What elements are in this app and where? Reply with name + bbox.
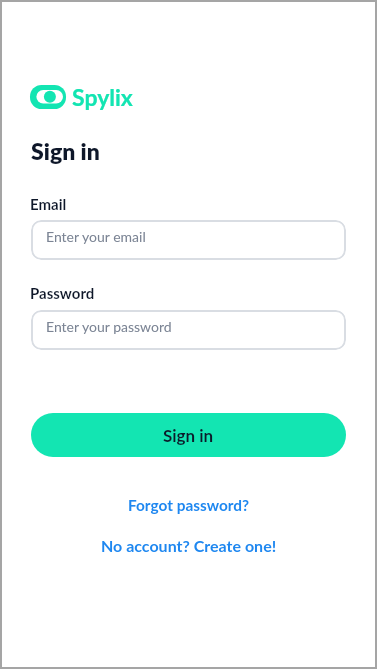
staticText: No account? Create one! (101, 536, 277, 555)
staticText: Spylix (72, 83, 133, 111)
staticText: Forgot password? (128, 496, 250, 514)
button[interactable]: No account? Create one! (101, 536, 277, 555)
staticText: Email (30, 195, 67, 213)
staticText: Sign in (31, 137, 100, 165)
staticText: Password (30, 284, 95, 302)
button[interactable]: Sign in (31, 413, 346, 457)
button[interactable]: Enter your password (31, 310, 346, 350)
button[interactable]: Forgot password? (128, 496, 250, 514)
staticText: Enter your email (46, 228, 146, 245)
button[interactable]: Enter your email (31, 220, 346, 260)
staticText: Sign in (163, 425, 214, 445)
staticText: Enter your password (46, 318, 172, 335)
